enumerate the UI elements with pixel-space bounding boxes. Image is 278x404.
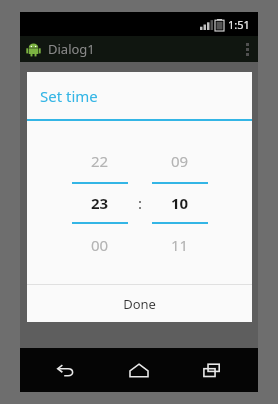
staticText: 09 [171, 151, 189, 171]
staticText: 11 [171, 235, 189, 255]
button[interactable]: Home [119, 350, 159, 390]
button[interactable]: 00 [72, 224, 128, 266]
staticText: 10 [171, 193, 189, 213]
staticText: 00 [91, 235, 109, 255]
staticText: 1:51 [228, 17, 250, 32]
button[interactable]: Recent apps [192, 350, 232, 390]
button[interactable]: 10 [152, 184, 208, 222]
staticText: 22 [91, 151, 109, 171]
button[interactable]: 23 [72, 184, 128, 222]
button[interactable]: Done [27, 285, 252, 322]
button[interactable]: 11 [152, 224, 208, 266]
button[interactable]: 09 [152, 140, 208, 182]
staticText: Dialog1 [48, 40, 95, 58]
staticText: Done [123, 295, 156, 313]
staticText: Set time [40, 86, 98, 106]
button[interactable]: More options [236, 36, 258, 62]
button[interactable]: 22 [72, 140, 128, 182]
button[interactable]: Back [46, 350, 86, 390]
staticText: 23 [91, 193, 109, 213]
staticText: : [138, 193, 143, 213]
